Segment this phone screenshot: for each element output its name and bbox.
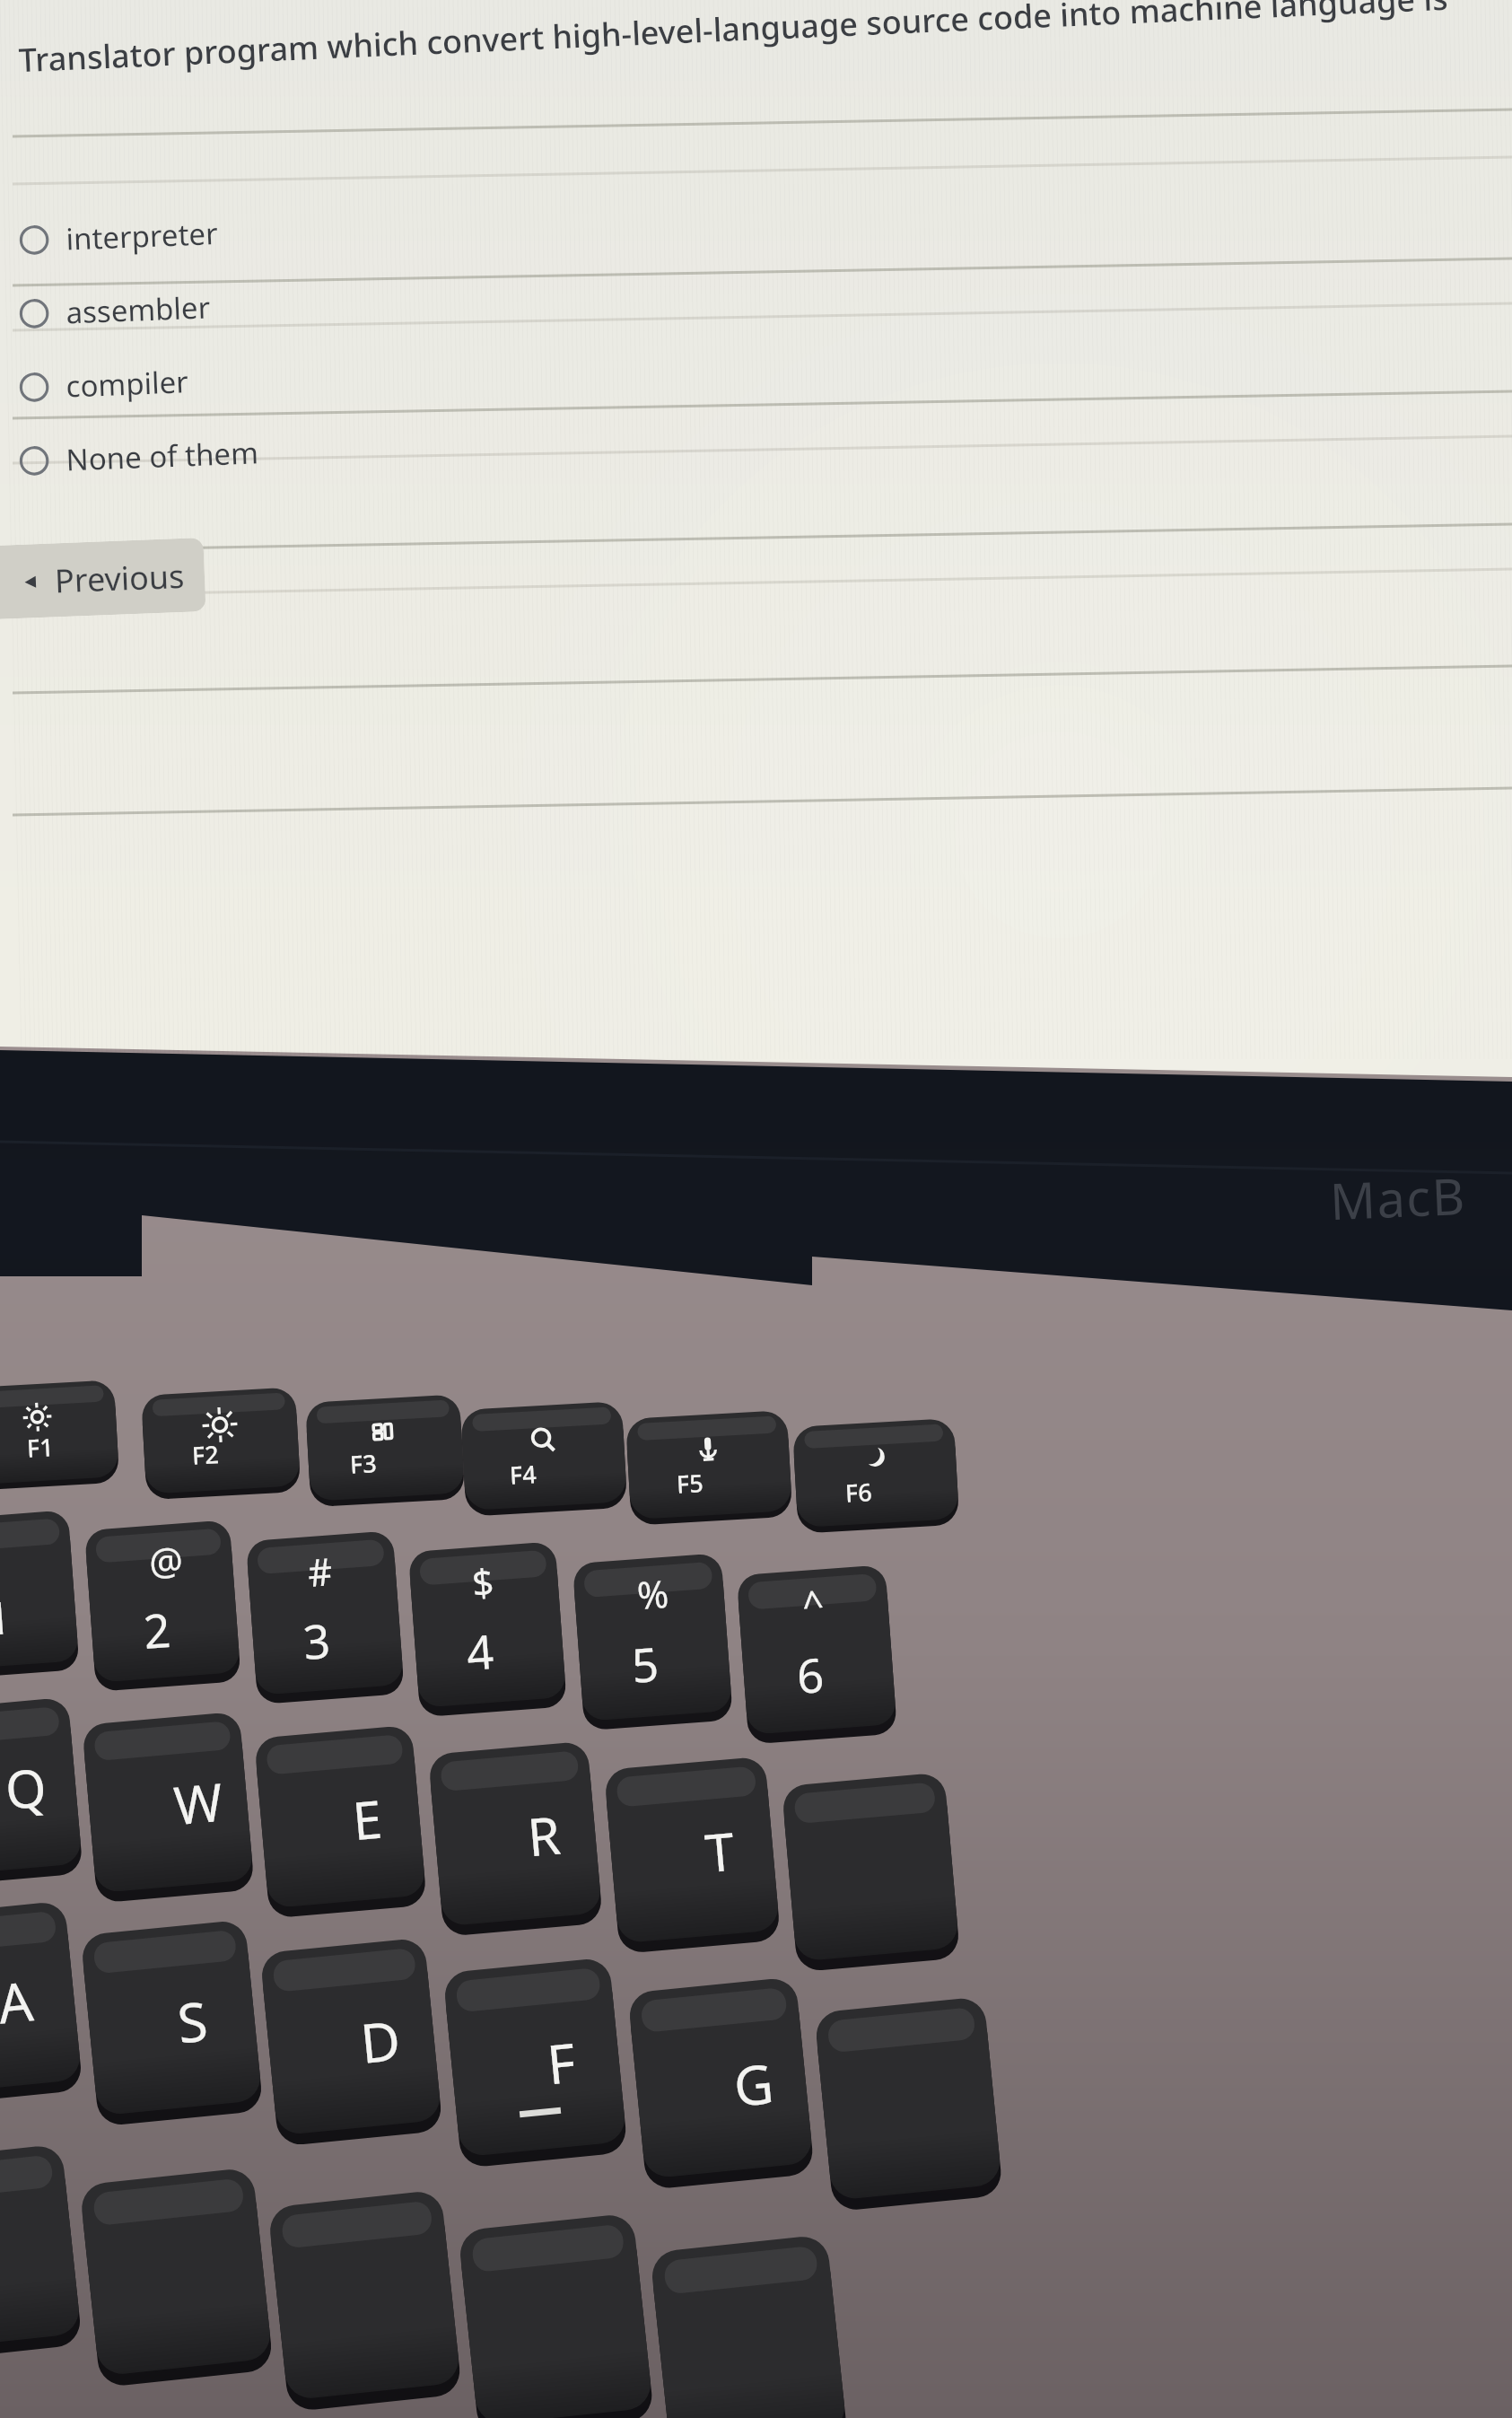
staticText: @ <box>147 1534 185 1587</box>
staticText: assembler <box>65 287 211 333</box>
button[interactable]: Increase brightness <box>183 1389 337 1490</box>
staticText: 4 <box>464 1618 496 1684</box>
staticText: F6 <box>844 1475 873 1509</box>
staticText: Q <box>2 1750 50 1825</box>
staticText: G <box>731 2046 777 2123</box>
staticText: 3 <box>301 1608 332 1673</box>
staticText: F1 <box>26 1430 55 1465</box>
staticText: F4 <box>509 1457 538 1492</box>
staticText: 2 <box>141 1597 173 1662</box>
staticText: % <box>635 1567 670 1620</box>
staticText: 5 <box>629 1631 661 1696</box>
staticText: Translator program which convert high-le… <box>18 0 1512 82</box>
staticText: F2 <box>191 1437 220 1472</box>
button[interactable]: Dictation <box>675 1389 829 1490</box>
staticText: compiler <box>65 361 190 406</box>
staticText: ^ <box>800 1577 826 1630</box>
staticText: MacB <box>1328 1160 1468 1234</box>
staticText: F <box>544 2025 580 2101</box>
button[interactable]: interpreter <box>17 151 1495 272</box>
staticText: ! <box>0 1524 2 1575</box>
staticText: interpreter <box>65 213 219 259</box>
button[interactable]: Do Not Disturb <box>842 1389 996 1490</box>
button[interactable]: Spotlight search <box>508 1389 662 1490</box>
button[interactable]: Previous <box>0 538 206 620</box>
staticText: 1 <box>0 1586 14 1649</box>
staticText: F5 <box>676 1466 704 1501</box>
staticText: T <box>702 1815 738 1888</box>
staticText: F3 <box>349 1446 378 1481</box>
staticText: None of them <box>65 432 260 480</box>
staticText: E <box>350 1782 385 1856</box>
button[interactable]: compiler <box>17 298 1495 420</box>
button[interactable]: assembler <box>17 225 1495 346</box>
staticText: $ <box>470 1556 496 1608</box>
button[interactable]: Decrease brightness <box>18 1389 172 1490</box>
staticText: R <box>525 1798 564 1872</box>
staticText: 6 <box>794 1642 826 1707</box>
staticText: A <box>0 1963 37 2040</box>
staticText: D <box>357 2002 404 2080</box>
staticText: # <box>306 1545 335 1598</box>
staticText: W <box>171 1765 226 1840</box>
staticText: Previous <box>54 554 186 603</box>
button[interactable]: Mission Control <box>348 1389 503 1490</box>
staticText: S <box>174 1983 211 2059</box>
button[interactable]: None of them <box>17 372 1495 493</box>
